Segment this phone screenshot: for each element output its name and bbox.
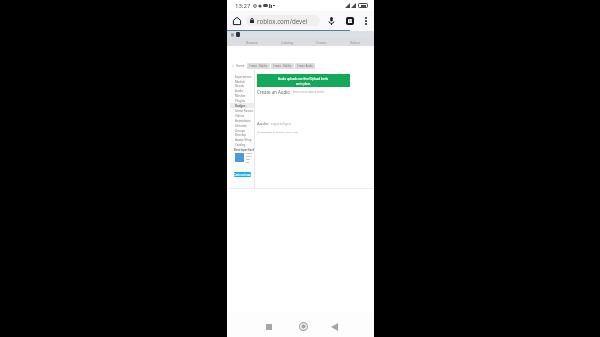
staticText: Plugins bbox=[235, 99, 245, 103]
staticText: Game Passes bbox=[235, 109, 253, 113]
button[interactable]: Groups bbox=[230, 128, 254, 133]
button[interactable]: Browse bbox=[244, 39, 260, 46]
button[interactable]: Models bbox=[230, 79, 254, 84]
staticText: Catalog bbox=[281, 40, 294, 45]
staticText: Avatar Shop bbox=[235, 138, 252, 142]
button[interactable]: Tabs bbox=[344, 15, 356, 27]
staticText: Models bbox=[235, 80, 245, 84]
staticText: roblox.com/devel bbox=[257, 17, 308, 25]
button[interactable]: More options bbox=[361, 16, 371, 26]
staticText: 14 bbox=[348, 18, 353, 24]
button[interactable]: Decals bbox=[230, 83, 254, 88]
staticText: Cash out now bbox=[234, 173, 251, 177]
staticText: Animations bbox=[235, 119, 251, 123]
staticText: Catalog bbox=[235, 143, 246, 147]
button[interactable]: Create Audio bbox=[295, 63, 315, 69]
staticText: Groups bbox=[235, 129, 245, 133]
staticText: Choose a file to upload max 7 mb bbox=[257, 130, 298, 133]
staticText: Meshes bbox=[235, 94, 246, 98]
staticText: Create - Roblox bbox=[249, 64, 268, 68]
staticText: Home bbox=[236, 64, 245, 68]
button[interactable]: Develop bbox=[230, 132, 254, 137]
button[interactable]: Badges bbox=[230, 103, 254, 108]
staticText: Videos bbox=[235, 114, 245, 118]
button[interactable]: Libraries bbox=[230, 123, 254, 128]
button[interactable]: Create - Roblox bbox=[271, 63, 294, 69]
button[interactable]: Avatar Shop bbox=[230, 137, 254, 142]
button[interactable]: Videos bbox=[230, 113, 254, 118]
staticText: Developer Exchange bbox=[234, 148, 258, 152]
staticText: supported types bbox=[271, 122, 291, 126]
button[interactable]: Animations bbox=[230, 118, 254, 123]
button[interactable]: Catalog bbox=[230, 142, 254, 147]
staticText: Develop bbox=[235, 133, 247, 137]
button[interactable]: Meshes bbox=[230, 93, 254, 98]
staticText: are in place. bbox=[296, 82, 311, 86]
button[interactable]: Home bbox=[230, 14, 243, 27]
button[interactable]: Game Passes bbox=[230, 108, 254, 113]
button[interactable]: Create - Roblox bbox=[247, 63, 270, 69]
button[interactable]: Robux bbox=[348, 39, 363, 46]
staticText: Badges bbox=[235, 104, 246, 108]
staticText: learn more about audio bbox=[293, 90, 325, 94]
staticText: Experiences bbox=[235, 75, 252, 79]
staticText: Robux bbox=[350, 40, 361, 45]
staticText: Create - Roblox bbox=[273, 64, 292, 68]
staticText: Create an Audio bbox=[257, 89, 290, 95]
button[interactable]: Recent apps bbox=[263, 321, 274, 332]
staticText: Audio bbox=[257, 121, 269, 127]
staticText: Libraries bbox=[235, 124, 247, 128]
staticText: Browse bbox=[246, 40, 258, 45]
button[interactable]: roblox.com/devel bbox=[246, 15, 320, 26]
button[interactable]: Catalog bbox=[279, 39, 296, 46]
button[interactable]: Experiences bbox=[230, 74, 254, 79]
button[interactable]: Create bbox=[314, 39, 329, 46]
staticText: Audio uploads are free! Upload limits bbox=[278, 77, 329, 81]
button[interactable]: Plugins bbox=[230, 98, 254, 103]
staticText: Decals bbox=[235, 84, 244, 88]
staticText: Create Audio bbox=[297, 64, 313, 68]
button[interactable]: Home bbox=[298, 321, 309, 332]
staticText: Create bbox=[316, 40, 327, 45]
button[interactable]: Voice search bbox=[325, 15, 337, 27]
button[interactable]: Cash out now bbox=[234, 172, 251, 177]
button[interactable]: Audio bbox=[230, 88, 254, 93]
staticText: « bbox=[232, 64, 234, 68]
staticText: Audio bbox=[235, 89, 243, 93]
button[interactable]: Back bbox=[329, 321, 340, 332]
staticText: 13:27 bbox=[235, 2, 251, 10]
